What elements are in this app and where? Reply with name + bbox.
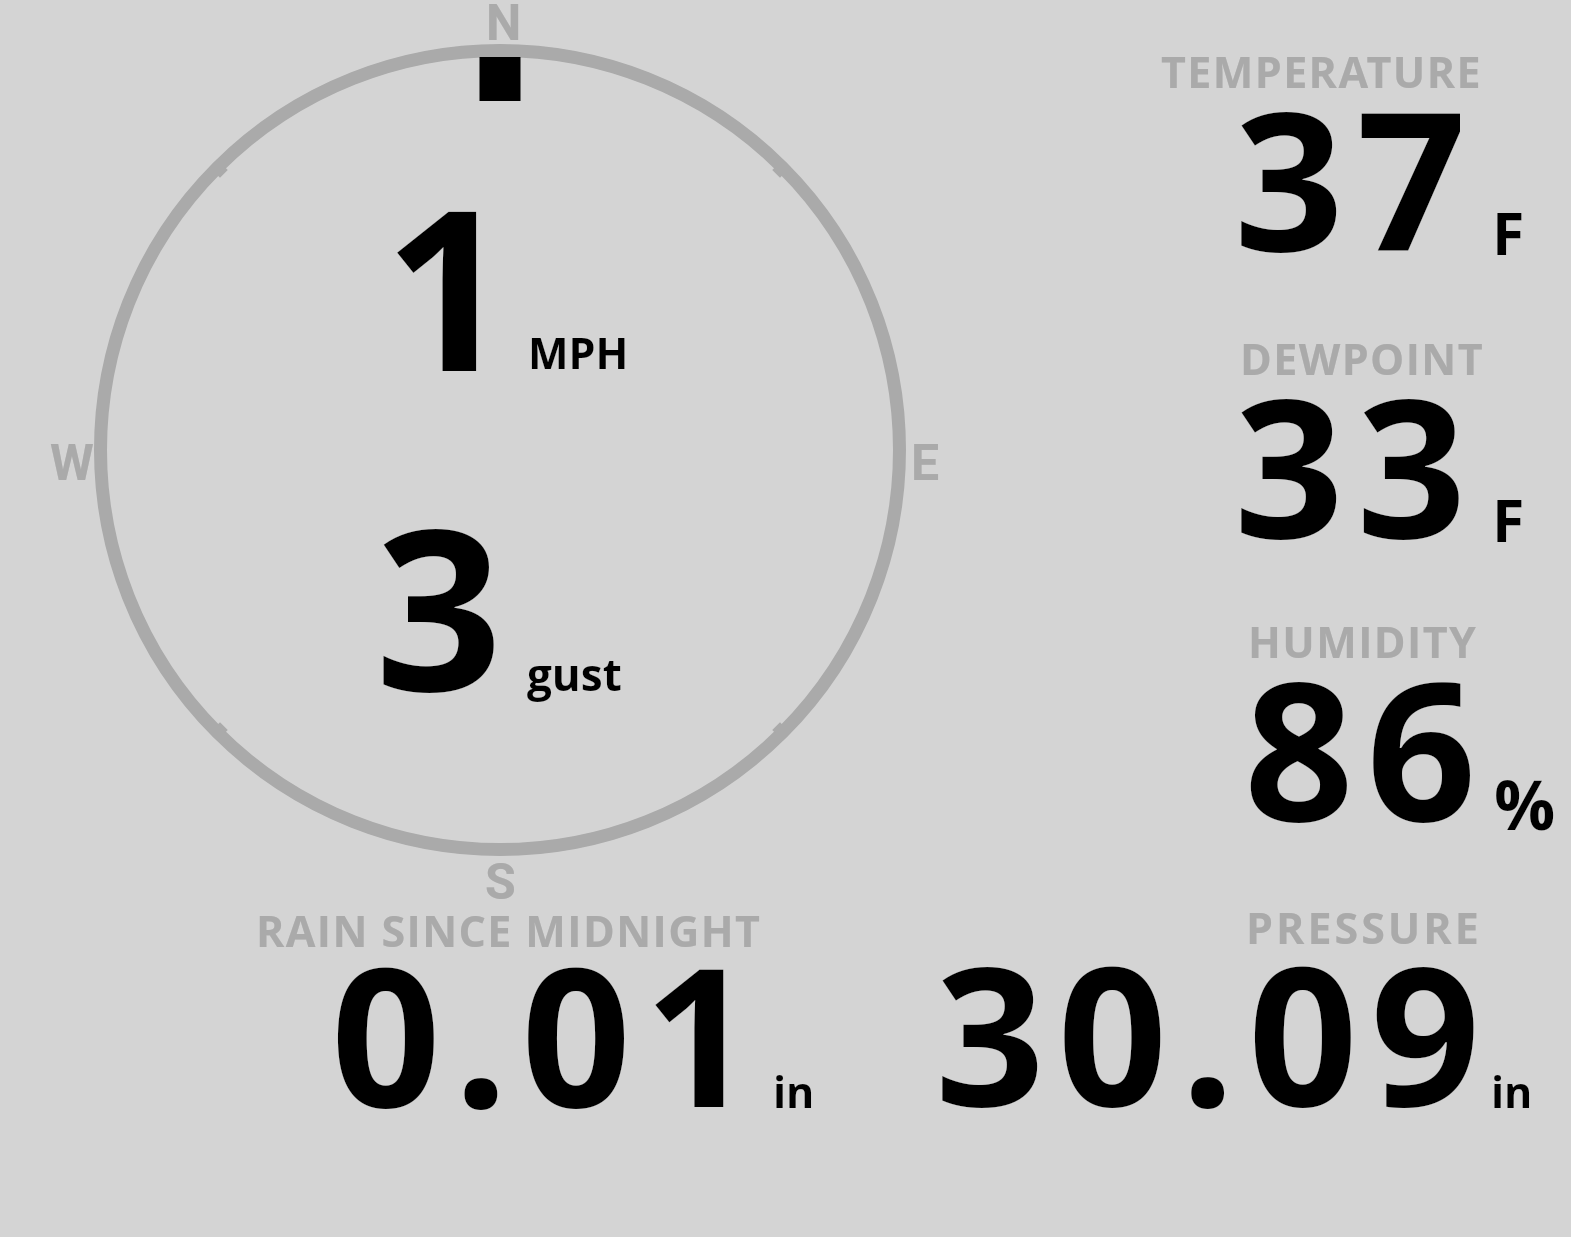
- staticText: RAIN SINCE MIDNIGHT: [256, 901, 762, 960]
- staticText: F: [1492, 479, 1525, 559]
- staticText: HUMIDITY: [1248, 612, 1478, 671]
- staticText: TEMPERATURE: [1161, 42, 1482, 101]
- staticText: in: [1491, 1062, 1533, 1121]
- staticText: S: [485, 853, 516, 912]
- button[interactable]: Pressure 30.09 inches: [900, 890, 1560, 1125]
- button[interactable]: Humidity 86 percent: [1150, 610, 1571, 870]
- staticText: F: [1492, 192, 1525, 272]
- staticText: 33: [1234, 333, 1480, 594]
- staticText: 30.09: [935, 901, 1494, 1162]
- staticText: DEWPOINT: [1240, 329, 1485, 388]
- staticText: %: [1494, 757, 1556, 850]
- staticText: gust: [527, 644, 622, 704]
- staticText: MPH: [528, 323, 629, 382]
- staticText: E: [911, 434, 940, 493]
- button[interactable]: Dewpoint 33 degrees Fahrenheit: [1150, 325, 1571, 585]
- staticText: 1: [384, 133, 525, 437]
- staticText: 37: [1234, 46, 1480, 307]
- button[interactable]: Rain since midnight 0.01 inches: [240, 895, 840, 1125]
- staticText: 3: [375, 453, 516, 757]
- staticText: in: [773, 1062, 815, 1121]
- staticText: 0.01: [331, 902, 767, 1163]
- button[interactable]: Wind direction compass, 1 miles per hour…: [60, 20, 940, 880]
- staticText: N: [486, 0, 522, 53]
- staticText: PRESSURE: [1246, 898, 1482, 957]
- staticText: 86: [1244, 616, 1490, 877]
- button[interactable]: Temperature 37 degrees Fahrenheit: [1150, 40, 1571, 310]
- staticText: W: [50, 434, 94, 493]
